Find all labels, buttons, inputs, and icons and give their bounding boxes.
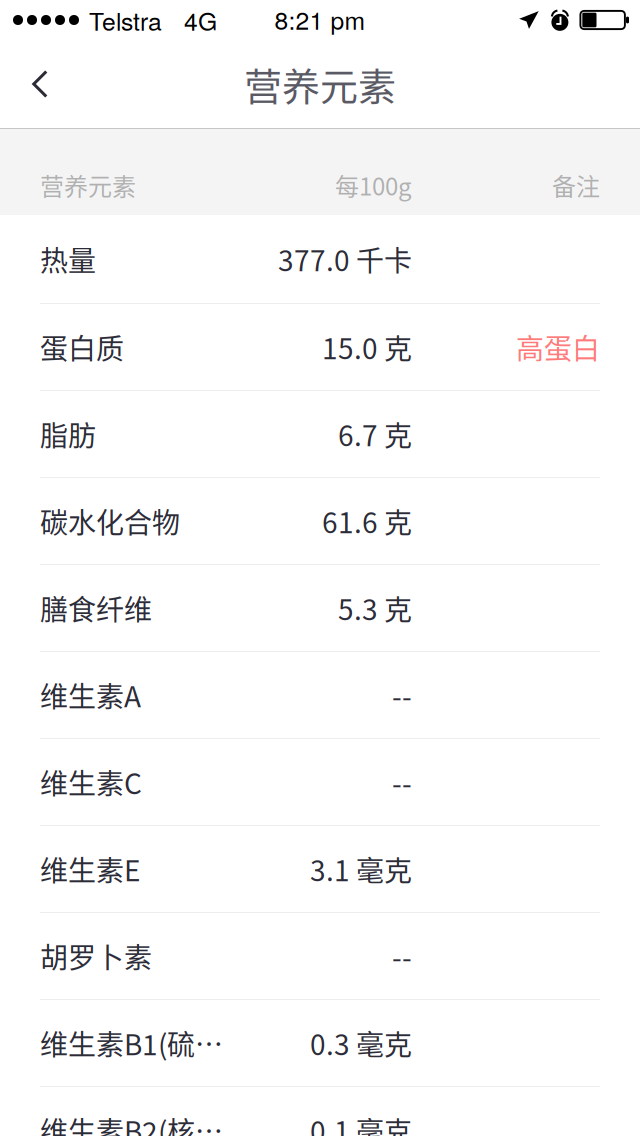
staticText: 维生素B2(核…	[40, 1110, 223, 1136]
staticText: 热量	[40, 239, 96, 279]
button[interactable]: 维生素E	[0, 825, 640, 912]
staticText: 维生素B1(硫…	[40, 1023, 223, 1063]
button[interactable]: 膳食纤维	[0, 564, 640, 651]
button[interactable]: 脂肪	[0, 390, 640, 477]
staticText: 6.7 克	[338, 414, 412, 454]
button[interactable]: 维生素B1(硫…	[0, 999, 640, 1086]
staticText: 377.0 千卡	[278, 239, 412, 279]
staticText: 维生素C	[40, 762, 142, 802]
staticText: 膳食纤维	[40, 588, 152, 628]
staticText: 15.0 克	[322, 327, 412, 367]
staticText: 备注	[552, 168, 600, 202]
staticText: 61.6 克	[322, 501, 412, 541]
staticText: 维生素E	[40, 849, 140, 889]
button[interactable]: 返回	[0, 40, 79, 128]
button[interactable]: 维生素C	[0, 738, 640, 825]
staticText: 维生素A	[40, 675, 141, 715]
button[interactable]: 热量	[0, 215, 640, 303]
staticText: 5.3 克	[338, 588, 412, 628]
button[interactable]: 碳水化合物	[0, 477, 640, 564]
staticText: 0.1 毫克	[310, 1110, 412, 1136]
staticText: 营养元素	[40, 168, 136, 202]
staticText: 每100g	[335, 168, 412, 202]
staticText: 4G	[184, 2, 217, 38]
staticText: 蛋白质	[40, 327, 124, 367]
staticText: 脂肪	[40, 414, 96, 454]
staticText: --	[392, 936, 412, 976]
staticText: 0.3 毫克	[310, 1023, 412, 1063]
button[interactable]: 维生素B2(核…	[0, 1086, 640, 1136]
button[interactable]: 蛋白质	[0, 303, 640, 390]
staticText: --	[392, 675, 412, 715]
staticText: --	[392, 762, 412, 802]
button[interactable]: 维生素A	[0, 651, 640, 738]
staticText: 胡罗卜素	[40, 936, 152, 976]
button[interactable]: 胡罗卜素	[0, 912, 640, 999]
staticText: 高蛋白	[516, 327, 600, 367]
staticText: 8:21 pm	[274, 1, 365, 37]
staticText: Telstra	[89, 2, 162, 38]
staticText: 碳水化合物	[40, 501, 180, 541]
staticText: 3.1 毫克	[310, 849, 412, 889]
staticText: 营养元素	[244, 56, 396, 111]
